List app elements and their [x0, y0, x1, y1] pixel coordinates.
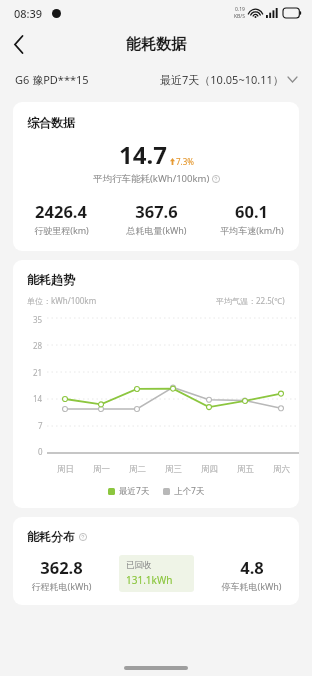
staticText: 28 [33, 340, 43, 351]
staticText: 周二 [129, 464, 146, 475]
staticText: 周日 [57, 464, 74, 475]
staticText: 行驶里程(km) [34, 224, 89, 236]
button[interactable]: 上个7天 [163, 485, 205, 497]
button[interactable]: 最近7天（10.05~10.11） [160, 72, 297, 87]
staticText: 周三 [165, 464, 182, 475]
button[interactable]: 最近7天 [108, 485, 150, 497]
staticText: 367.6 [135, 200, 178, 222]
staticText: 平均气温：22.5(℃) [216, 295, 285, 306]
staticText: KB/S [234, 13, 245, 20]
staticText: 总耗电量(kWh) [126, 224, 187, 236]
staticText: 能耗趋势 [27, 272, 75, 287]
button[interactable]: Back [0, 26, 38, 63]
staticText: 35 [33, 314, 43, 325]
button[interactable]: 362.8 [13, 556, 109, 592]
staticText: 4.8 [240, 556, 264, 578]
staticText: 周六 [273, 464, 290, 475]
staticText: 综合数据 [27, 115, 75, 130]
staticText: 131.1kWh [126, 573, 173, 587]
staticText: 平均车速(km/h) [220, 224, 284, 236]
staticText: 0.19 [235, 6, 245, 13]
button[interactable]: G6 豫PD***15 [15, 72, 89, 87]
staticText: 21 [33, 367, 43, 378]
staticText: 能耗分布 [27, 529, 75, 544]
staticText: 08:39 [14, 6, 43, 21]
staticText: 上个7天 [174, 485, 205, 497]
staticText: 周四 [201, 464, 218, 475]
staticText: 60.1 [235, 200, 268, 222]
staticText: 最近7天（10.05~10.11） [160, 72, 284, 87]
staticText: 7.3% [176, 156, 194, 167]
staticText: 周五 [237, 464, 254, 475]
staticText: 停车耗电(kWh) [221, 580, 282, 592]
staticText: 能耗数据 [126, 35, 186, 54]
staticText: 周一 [93, 464, 110, 475]
staticText: 单位：kWh/100km [27, 295, 97, 306]
staticText: 2426.4 [35, 200, 87, 222]
staticText: 最近7天 [119, 485, 150, 497]
button[interactable]: 367.6 [109, 200, 204, 236]
button[interactable]: 2426.4 [13, 200, 109, 236]
staticText: 平均行车能耗(kWh/100km) [93, 172, 210, 185]
staticText: 14 [33, 393, 43, 404]
staticText: 已回收 [126, 560, 152, 571]
button[interactable]: 60.1 [204, 200, 299, 236]
button[interactable]: 4.8 [204, 556, 299, 592]
staticText: 行程耗电(kWh) [31, 580, 92, 592]
staticText: 362.8 [40, 556, 83, 578]
button[interactable]: 已回收 [119, 555, 194, 592]
staticText: 7 [38, 420, 43, 431]
staticText: 14.7 [119, 138, 167, 171]
staticText: 0 [38, 446, 43, 457]
